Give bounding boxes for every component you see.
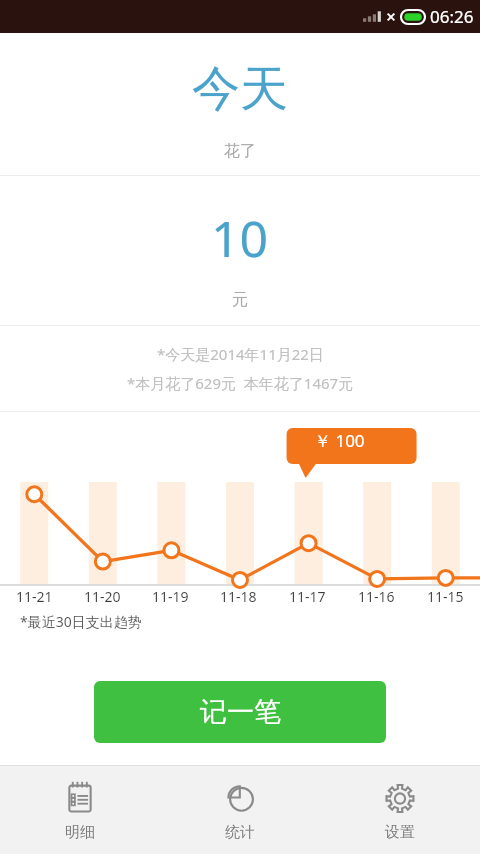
button[interactable]: 明细 bbox=[0, 766, 160, 854]
staticText: 10 bbox=[211, 204, 269, 272]
staticText: 记一笔 bbox=[200, 695, 281, 729]
staticText: ￥ 100 bbox=[314, 429, 365, 452]
staticText: 11-17 bbox=[289, 587, 326, 606]
button[interactable]: 统计 bbox=[160, 766, 320, 854]
staticText: 花了 bbox=[224, 141, 256, 161]
staticText: *今天是2014年11月22日 bbox=[157, 344, 324, 364]
staticText: *本月花了629元 本年花了1467元 bbox=[127, 373, 354, 393]
staticText: 11-19 bbox=[152, 587, 189, 606]
staticText: 11-15 bbox=[427, 587, 464, 606]
staticText: 06:26 bbox=[430, 5, 474, 28]
button[interactable]: 设置 bbox=[320, 766, 480, 854]
staticText: 11-21 bbox=[16, 587, 53, 606]
staticText: 11-16 bbox=[358, 587, 395, 606]
staticText: 11-20 bbox=[84, 587, 121, 606]
staticText: 11-18 bbox=[220, 587, 257, 606]
staticText: 今天 bbox=[192, 59, 288, 119]
staticText: *最近30日支出趋势 bbox=[20, 612, 142, 631]
staticText: 统计 bbox=[225, 823, 255, 842]
staticText: 设置 bbox=[385, 823, 415, 842]
staticText: 明细 bbox=[65, 823, 95, 842]
staticText: 元 bbox=[232, 290, 248, 310]
button[interactable]: 记一笔 bbox=[94, 681, 386, 743]
